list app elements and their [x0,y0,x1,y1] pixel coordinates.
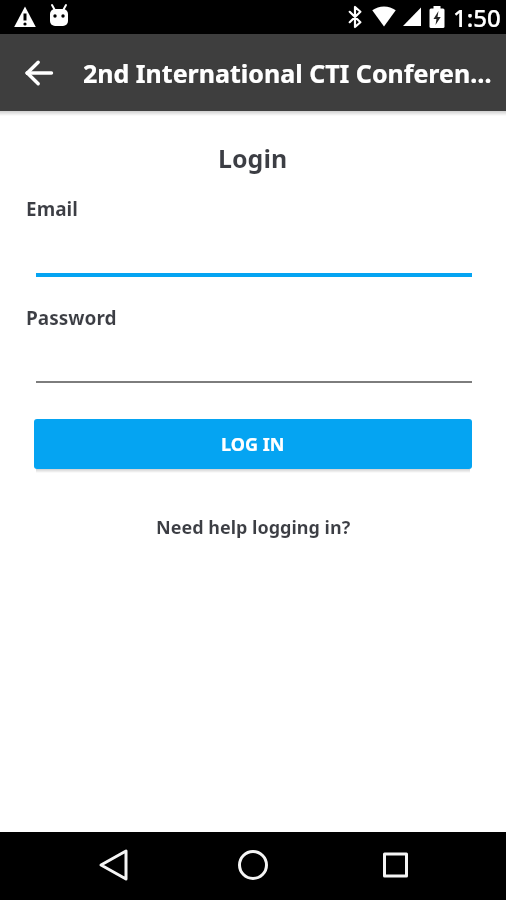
button[interactable]: Need help logging in? [0,512,506,542]
staticText: Login [218,141,288,175]
staticText: 1:50 [453,1,501,34]
staticText: 2nd International CTI Conferen… [83,56,492,90]
button[interactable]: LOG IN [34,419,472,469]
staticText: Need help logging in? [156,515,351,540]
button[interactable] [168,832,337,900]
button[interactable] [0,832,168,900]
button[interactable] [0,45,56,101]
staticText: Email [26,196,78,222]
button[interactable] [337,832,506,900]
staticText: Password [26,305,117,331]
staticText: LOG IN [221,432,285,457]
